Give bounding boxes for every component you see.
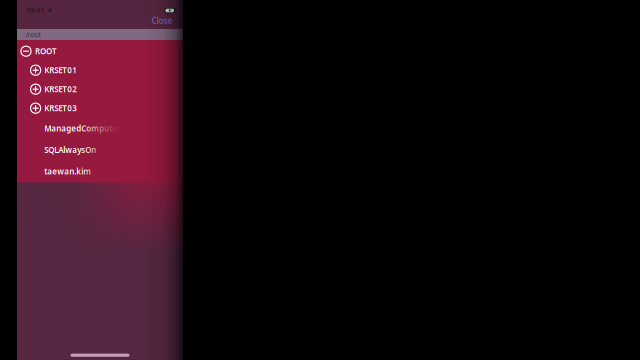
button[interactable]: Close [148,17,177,29]
staticText: KRSET02 [44,84,77,94]
staticText: Close [152,15,173,26]
button[interactable]: KRSET01 [17,61,183,80]
staticText: ROOT [35,46,57,56]
button[interactable]: ManagedComputer [17,118,183,139]
staticText: SQLAlwaysOn [44,145,96,155]
staticText: KRSET03 [44,103,77,113]
staticText: 09:41 [27,6,45,15]
button[interactable]: KRSET02 [17,80,183,99]
staticText: KRSET01 [44,65,77,75]
button[interactable]: SQLAlwaysOn [17,139,183,161]
staticText: taewan.kim [44,166,91,177]
button[interactable]: KRSET03 [17,99,183,118]
button[interactable]: ROOT [17,42,183,61]
button[interactable]: taewan.kim [17,161,183,182]
staticText: /root [26,30,41,39]
staticText: ManagedComputer [44,123,120,134]
